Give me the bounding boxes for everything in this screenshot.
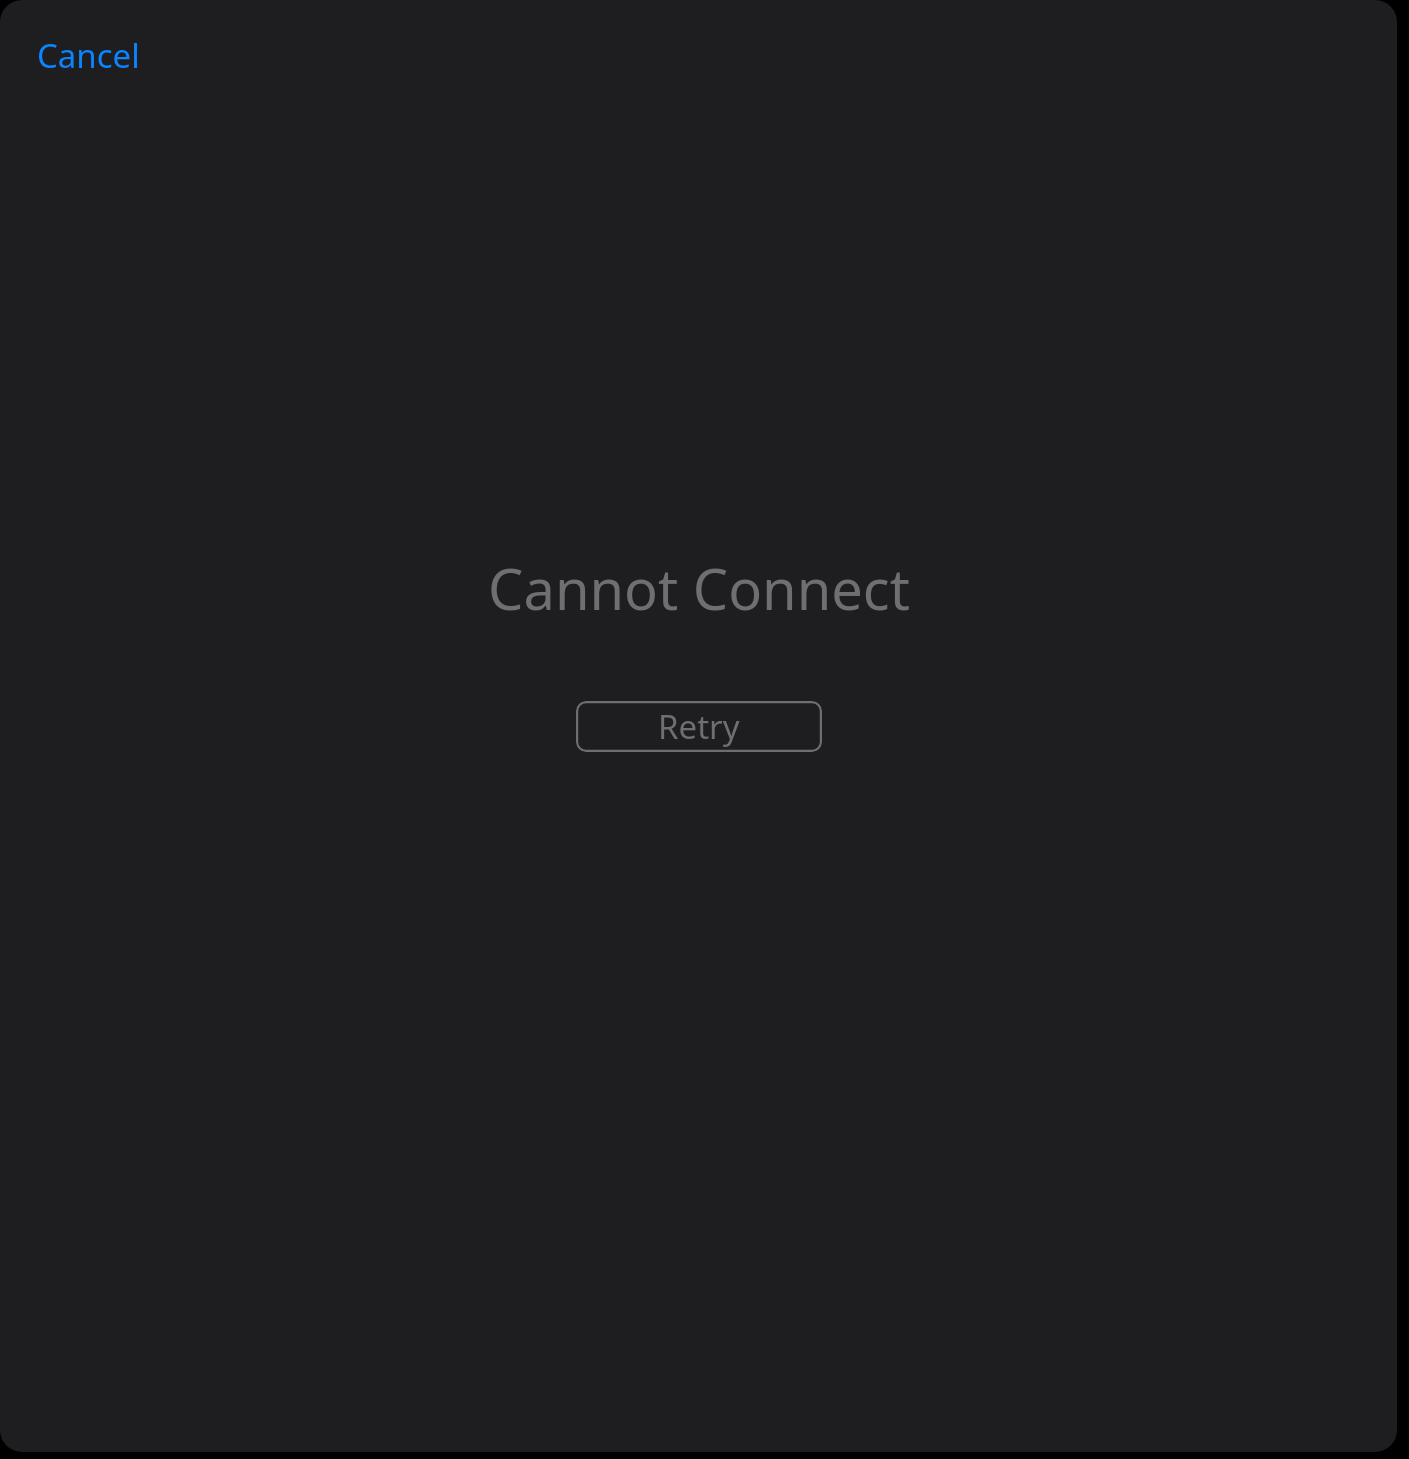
button[interactable]: Cancel — [20, 22, 160, 88]
staticText: Cancel — [37, 33, 140, 78]
staticText: Cannot Connect — [488, 550, 910, 626]
button[interactable]: Retry — [576, 701, 822, 752]
staticText: Retry — [658, 704, 740, 749]
